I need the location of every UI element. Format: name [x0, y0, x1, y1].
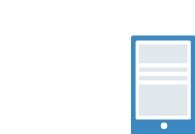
- button[interactable]: List item one: [139, 68, 188, 72]
- button[interactable]: List item two: [139, 76, 188, 81]
- button[interactable]: Home: [161, 123, 168, 130]
- button[interactable]: Featured card: [139, 45, 188, 64]
